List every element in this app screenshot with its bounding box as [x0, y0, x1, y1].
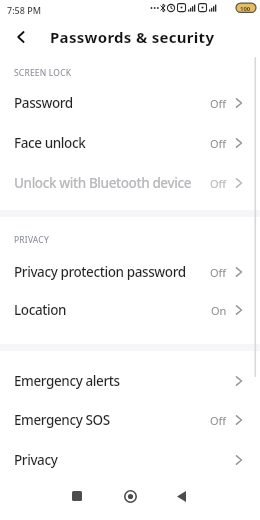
staticText: Privacy	[14, 451, 58, 469]
button[interactable]: Unlock with Bluetooth device	[0, 163, 260, 203]
staticText: Off	[210, 265, 227, 280]
staticText: 7:58 PM	[7, 4, 41, 16]
staticText: Password	[14, 94, 73, 112]
button[interactable]	[166, 481, 196, 511]
staticText: On	[211, 303, 227, 318]
button[interactable]: Privacy	[0, 440, 260, 480]
staticText: Privacy protection password	[14, 263, 186, 281]
button[interactable]	[115, 481, 146, 512]
button[interactable]: Emergency alerts	[0, 361, 260, 401]
staticText: PRIVACY	[14, 234, 49, 246]
button[interactable]: Password	[0, 83, 260, 123]
staticText: Emergency alerts	[14, 372, 120, 390]
staticText: Off	[210, 96, 227, 111]
button[interactable]: Privacy protection password	[0, 252, 260, 292]
staticText: Location	[14, 301, 67, 319]
staticText: SCREEN LOCK	[14, 67, 72, 79]
button[interactable]: Emergency SOS	[0, 400, 260, 440]
staticText: Off	[210, 176, 227, 191]
button[interactable]	[6, 22, 36, 52]
staticText: Off	[210, 413, 227, 428]
staticText: Face unlock	[14, 134, 86, 152]
staticText: Emergency SOS	[14, 411, 110, 429]
button[interactable]: Face unlock	[0, 123, 260, 163]
staticText: Passwords & security	[50, 27, 215, 47]
staticText: Off	[210, 136, 227, 151]
button[interactable]	[62, 481, 92, 511]
button[interactable]: Location	[0, 290, 260, 330]
staticText: Unlock with Bluetooth device	[14, 174, 191, 192]
staticText: 100	[240, 5, 251, 13]
